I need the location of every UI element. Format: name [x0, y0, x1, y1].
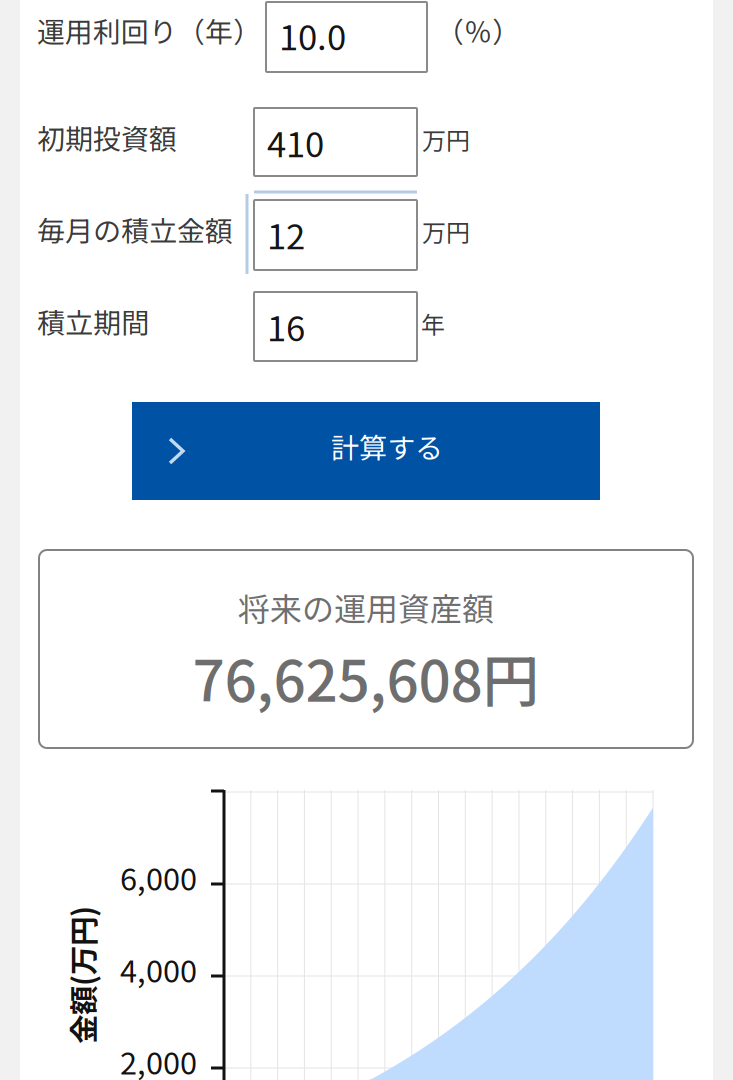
staticText: 運用利回り（年）	[37, 10, 261, 50]
button[interactable]: 12	[254, 200, 417, 270]
staticText: 2,000	[120, 1039, 197, 1080]
staticText: 4,000	[120, 947, 197, 991]
staticText: 16	[267, 301, 305, 351]
staticText: 12	[267, 209, 305, 259]
staticText: 万円	[422, 122, 470, 157]
staticText: 万円	[422, 214, 470, 249]
staticText: 毎月の積立金額	[37, 209, 233, 249]
staticText: 将来の運用資産額	[238, 584, 494, 630]
staticText: 積立期間	[37, 301, 149, 341]
staticText: （％）	[436, 10, 520, 50]
staticText: 年	[421, 306, 445, 341]
staticText: 計算する	[331, 426, 443, 466]
button[interactable]: 410	[254, 108, 417, 176]
staticText: 76,625,608円	[192, 636, 539, 718]
staticText: 410	[267, 117, 324, 167]
staticText: 初期投資額	[37, 117, 177, 157]
staticText: 6,000	[120, 855, 197, 899]
staticText: 10.0	[279, 10, 346, 60]
button[interactable]: 16	[254, 292, 417, 361]
button[interactable]: 計算する	[132, 402, 600, 500]
button[interactable]: 10.0	[266, 2, 427, 72]
staticText: 金額(万円)	[12, 953, 150, 995]
